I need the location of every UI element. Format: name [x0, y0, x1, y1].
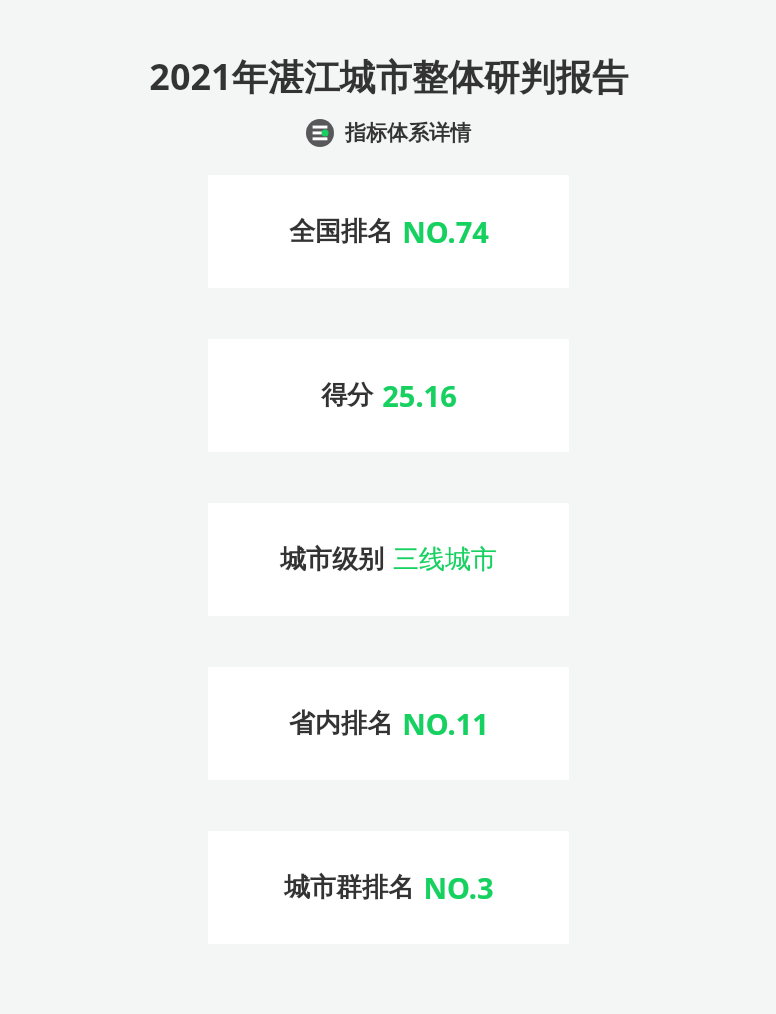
staticText: 城市群排名 [284, 871, 414, 904]
staticText: 指标体系详情 [345, 120, 471, 146]
other: 指标体系详情 [306, 119, 334, 147]
staticText: NO.11 [402, 704, 489, 743]
staticText: 省内排名 [289, 707, 393, 740]
staticText: NO.3 [423, 868, 494, 907]
button[interactable]: 城市群排名 [208, 831, 569, 944]
staticText: 2021年湛江城市整体研判报告 [149, 52, 628, 101]
staticText: 25.16 [382, 376, 457, 415]
staticText: 得分 [321, 379, 373, 412]
button[interactable]: 得分 [208, 339, 569, 452]
button[interactable]: 城市级别 [208, 503, 569, 616]
staticText: 三线城市 [393, 543, 497, 576]
button[interactable]: 全国排名 [208, 175, 569, 288]
button[interactable]: 指标体系详情 [302, 117, 475, 149]
staticText: NO.74 [402, 212, 489, 251]
button[interactable]: 省内排名 [208, 667, 569, 780]
staticText: 全国排名 [289, 215, 393, 248]
staticText: 城市级别 [280, 543, 384, 576]
